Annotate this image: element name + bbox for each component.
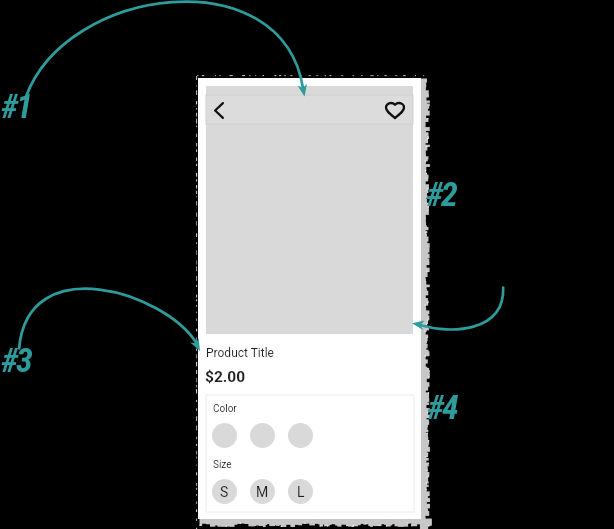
button[interactable]: Add to favorites	[383, 98, 407, 122]
button[interactable]: M	[250, 479, 275, 504]
staticText: S	[220, 484, 229, 500]
staticText: M	[256, 484, 269, 500]
staticText: Size	[213, 459, 232, 471]
staticText: #4	[427, 387, 457, 427]
button[interactable]: S	[212, 479, 237, 504]
staticText: L	[297, 484, 305, 500]
button[interactable]: Colour swatch	[250, 423, 275, 448]
staticText: #1	[1, 86, 31, 126]
staticText: Color	[213, 403, 237, 415]
staticText: $2.00	[205, 368, 246, 386]
staticText: Product Title	[206, 346, 274, 360]
button[interactable]: Colour swatch	[288, 423, 313, 448]
staticText: #3	[1, 340, 31, 380]
button[interactable]: Colour swatch	[212, 423, 237, 448]
staticText: #2	[426, 174, 456, 214]
button[interactable]: L	[288, 479, 313, 504]
button[interactable]: Back	[207, 98, 231, 122]
